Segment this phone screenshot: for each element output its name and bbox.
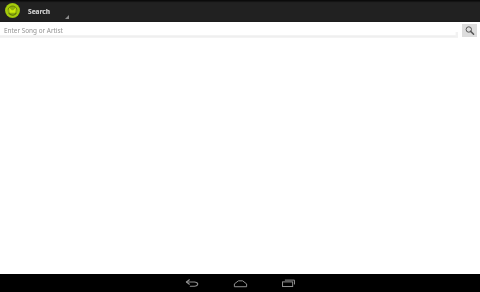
button[interactable]: Recent apps bbox=[272, 274, 304, 292]
button[interactable]: Search bbox=[462, 24, 477, 37]
button[interactable]: Back bbox=[176, 274, 208, 292]
staticText: Enter Song or Artist bbox=[4, 26, 63, 35]
button[interactable]: Enter Song or Artist bbox=[0, 22, 458, 38]
button[interactable]: Search bbox=[24, 0, 72, 22]
button[interactable]: App logo, navigate up bbox=[2, 0, 22, 20]
button[interactable]: Home bbox=[224, 274, 256, 292]
staticText: Search bbox=[28, 7, 51, 16]
